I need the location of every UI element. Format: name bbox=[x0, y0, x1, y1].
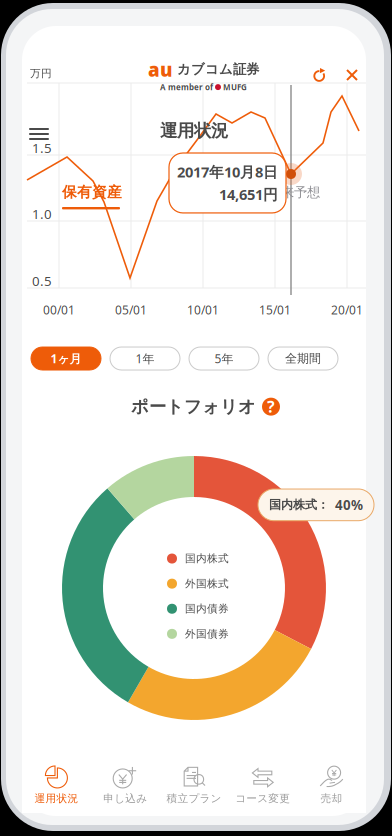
button[interactable]: Menu bbox=[22, 121, 56, 147]
button[interactable]: 申し込み bbox=[91, 757, 160, 813]
button[interactable]: 運用状況 bbox=[22, 757, 91, 813]
staticText: 15/01 bbox=[259, 302, 291, 318]
staticText: 40% bbox=[335, 496, 363, 514]
staticText: 万円 bbox=[30, 67, 52, 80]
staticText: 5年 bbox=[214, 350, 233, 366]
staticText: 申し込み bbox=[103, 792, 147, 805]
staticText: 外国株式 bbox=[185, 577, 229, 590]
button[interactable]: 全期間 bbox=[268, 347, 338, 370]
staticText: 1.5 bbox=[32, 139, 52, 157]
staticText: 10/01 bbox=[187, 302, 219, 318]
button[interactable]: Help bbox=[262, 398, 280, 416]
button[interactable]: Close bbox=[339, 62, 365, 88]
button[interactable]: 1ヶ月 bbox=[31, 347, 101, 370]
staticText: 00/01 bbox=[43, 302, 75, 318]
staticText: コース変更 bbox=[235, 792, 290, 805]
staticText: 1年 bbox=[135, 350, 154, 366]
staticText: 20/01 bbox=[331, 302, 363, 318]
staticText: ? bbox=[267, 396, 275, 417]
staticText: 2017年10月8日 bbox=[177, 162, 278, 181]
staticText: 国内株式 bbox=[185, 552, 229, 565]
staticText: au bbox=[148, 57, 173, 82]
staticText: ポートフォリオ bbox=[131, 396, 256, 417]
button[interactable]: 1年 bbox=[110, 347, 180, 370]
staticText: カブコム証券 bbox=[177, 61, 259, 78]
staticText: 国内債券 bbox=[185, 602, 229, 615]
staticText: 1ヶ月 bbox=[50, 350, 81, 366]
staticText: 積立プラン bbox=[166, 792, 221, 805]
staticText: 1.0 bbox=[32, 205, 52, 223]
button[interactable]: 5年 bbox=[189, 347, 259, 370]
staticText: 05/01 bbox=[115, 302, 147, 318]
staticText: 保有資産 bbox=[62, 183, 122, 201]
staticText: 国内株式： bbox=[269, 497, 329, 512]
staticText: 運用状況 bbox=[160, 120, 228, 141]
button[interactable]: Refresh bbox=[306, 61, 333, 90]
staticText: A member of bbox=[160, 82, 213, 92]
button[interactable]: コース変更 bbox=[228, 757, 297, 813]
staticText: 0.5 bbox=[32, 272, 52, 290]
staticText: MUFG bbox=[223, 82, 247, 92]
staticText: 売却 bbox=[321, 792, 343, 805]
staticText: 外国債券 bbox=[185, 627, 229, 640]
staticText: 運用状況 bbox=[34, 792, 78, 805]
staticText: 全期間 bbox=[285, 351, 321, 366]
button[interactable]: 売却 bbox=[297, 757, 366, 813]
staticText: 14,651円 bbox=[219, 184, 278, 204]
staticText: 将来予想 bbox=[268, 184, 320, 200]
button[interactable]: 積立プラン bbox=[160, 757, 228, 813]
